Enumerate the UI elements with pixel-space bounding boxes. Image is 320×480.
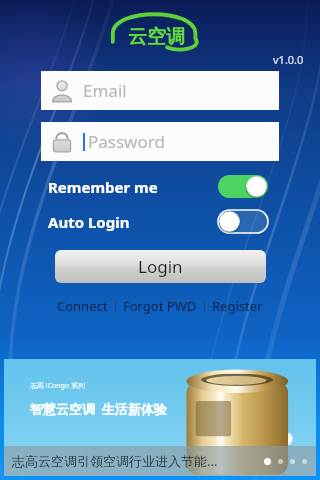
button[interactable]: Connect — [50, 294, 115, 318]
staticText: 志高 iCongo 系列 — [30, 381, 85, 391]
staticText: Auto Login — [48, 212, 130, 232]
button[interactable]: Off — [218, 210, 268, 233]
button[interactable]: Email — [41, 71, 279, 110]
button[interactable]: Login — [55, 250, 266, 283]
button[interactable]: Register — [205, 294, 270, 318]
button[interactable]: Remember me — [48, 175, 268, 198]
button[interactable]: On — [218, 175, 268, 198]
staticText: 智慧云空调 生活新体验 — [30, 400, 167, 418]
button[interactable]: Password — [41, 122, 279, 161]
staticText: Remember me — [48, 177, 158, 197]
staticText: Password — [88, 130, 165, 153]
staticText: 志高云空调引领空调行业进入节能... — [12, 452, 218, 470]
staticText: Login — [138, 255, 183, 278]
button[interactable]: 志高 iCongo 系列 — [4, 359, 316, 476]
button[interactable]: Forgot PWD — [116, 294, 204, 318]
staticText: Email — [83, 79, 127, 102]
staticText: v1.0.0 — [273, 52, 304, 66]
staticText: 云空调 — [128, 25, 185, 49]
button[interactable]: Auto Login — [48, 210, 268, 233]
